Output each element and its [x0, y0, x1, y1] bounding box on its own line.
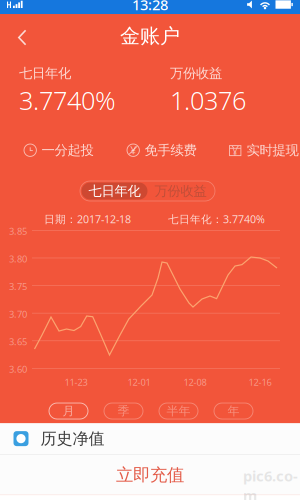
staticText: 万份收益	[170, 65, 222, 81]
staticText: 七日年化	[19, 65, 71, 81]
button[interactable]: ¥	[127, 138, 196, 162]
staticText: 立即充值	[116, 464, 184, 486]
staticText: 金账户	[120, 24, 180, 48]
button[interactable]: 历史净值	[0, 423, 300, 454]
staticText: 历史净值	[40, 429, 104, 448]
staticText: ¥	[233, 147, 238, 158]
button[interactable]: ¥	[229, 138, 298, 162]
staticText: 万份收益	[154, 183, 206, 199]
button[interactable]: 年	[214, 403, 253, 419]
staticText: 七日年化：3.7740%	[168, 212, 265, 226]
staticText: 年	[227, 404, 239, 418]
staticText: 3.65	[9, 335, 27, 348]
button[interactable]: 季	[104, 403, 143, 419]
staticText: 3.85	[9, 225, 27, 237]
staticText: 11-23	[64, 376, 87, 388]
staticText: 季	[117, 404, 129, 418]
staticText: 3.80	[9, 253, 27, 265]
staticText: 1.0376	[170, 83, 246, 117]
staticText: 12-16	[248, 376, 271, 388]
staticText: pic6.com	[243, 466, 298, 500]
staticText: 一分起投	[41, 142, 93, 158]
staticText: 3.70	[9, 308, 27, 320]
button[interactable]: 半年	[159, 403, 198, 419]
staticText: 实时提现	[246, 142, 298, 158]
button[interactable]: 七日年化	[81, 182, 147, 199]
staticText: 12-08	[183, 376, 206, 388]
staticText: 3.7740%	[19, 83, 116, 117]
staticText: 12-01	[127, 376, 150, 388]
button[interactable]: 立即充值	[0, 455, 300, 495]
button[interactable]: Back	[0, 17, 42, 49]
button[interactable]: 月	[49, 403, 88, 419]
button[interactable]: 一分起投	[24, 138, 93, 162]
staticText: 3.60	[9, 363, 27, 375]
staticText: 七日年化	[88, 183, 140, 199]
staticText: 月	[62, 404, 74, 418]
staticText: 日期：2017-12-18	[44, 212, 131, 226]
staticText: ¥	[130, 143, 136, 157]
staticText: 半年	[166, 404, 190, 418]
staticText: 3.75	[9, 280, 27, 293]
staticText: 13:28	[132, 0, 168, 14]
button[interactable]: 万份收益	[147, 182, 213, 199]
staticText: 免手续费	[144, 142, 196, 158]
